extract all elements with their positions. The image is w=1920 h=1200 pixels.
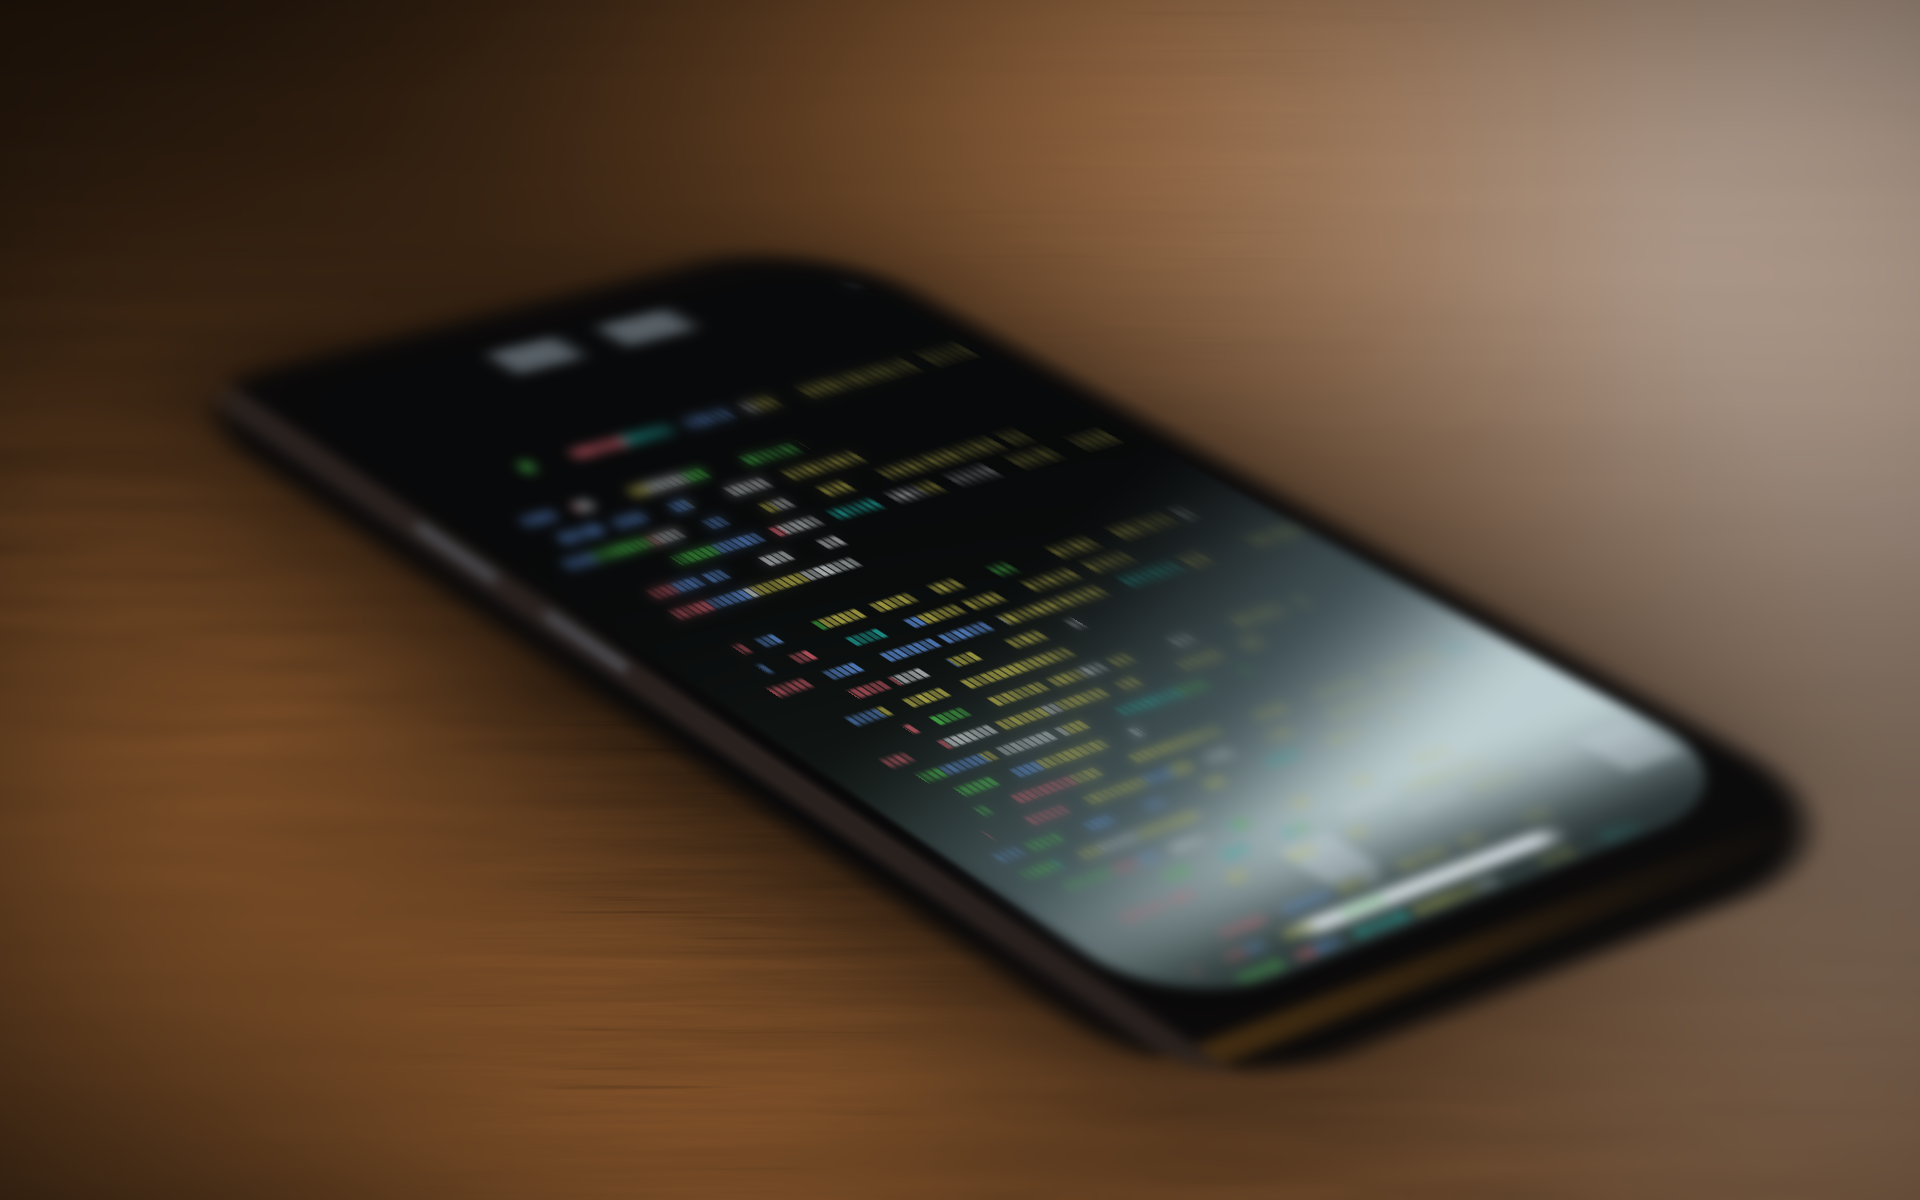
button[interactable]: Source code editor [560,430,1320,950]
button[interactable]: App shortcuts [1180,760,1600,940]
button[interactable]: Home indicator [1290,880,1590,940]
button[interactable]: Editor tabs [520,300,880,420]
